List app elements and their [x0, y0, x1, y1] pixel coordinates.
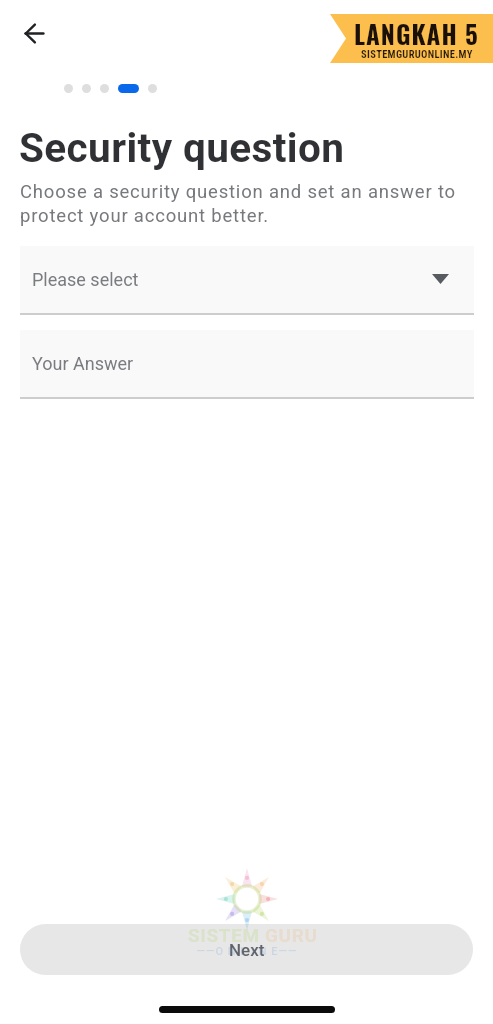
button[interactable]: Back [11, 10, 57, 56]
button[interactable]: Next [20, 924, 473, 975]
staticText: GURU [265, 924, 318, 946]
staticText: Your Answer [32, 353, 134, 374]
button[interactable]: Your Answer [20, 330, 474, 399]
staticText: Choose a security question and set an an… [20, 181, 472, 227]
staticText: Please select [32, 269, 139, 290]
staticText: SISTEM [188, 924, 265, 946]
staticText: Next [229, 940, 265, 960]
button[interactable]: Please select security question [20, 246, 474, 315]
staticText: LANGKAH 5 [354, 15, 479, 52]
staticText: SISTEMGURUONLINE.MY [361, 48, 473, 60]
staticText: Security question [19, 124, 345, 171]
staticText: ——O N L I N E—— [196, 945, 298, 958]
